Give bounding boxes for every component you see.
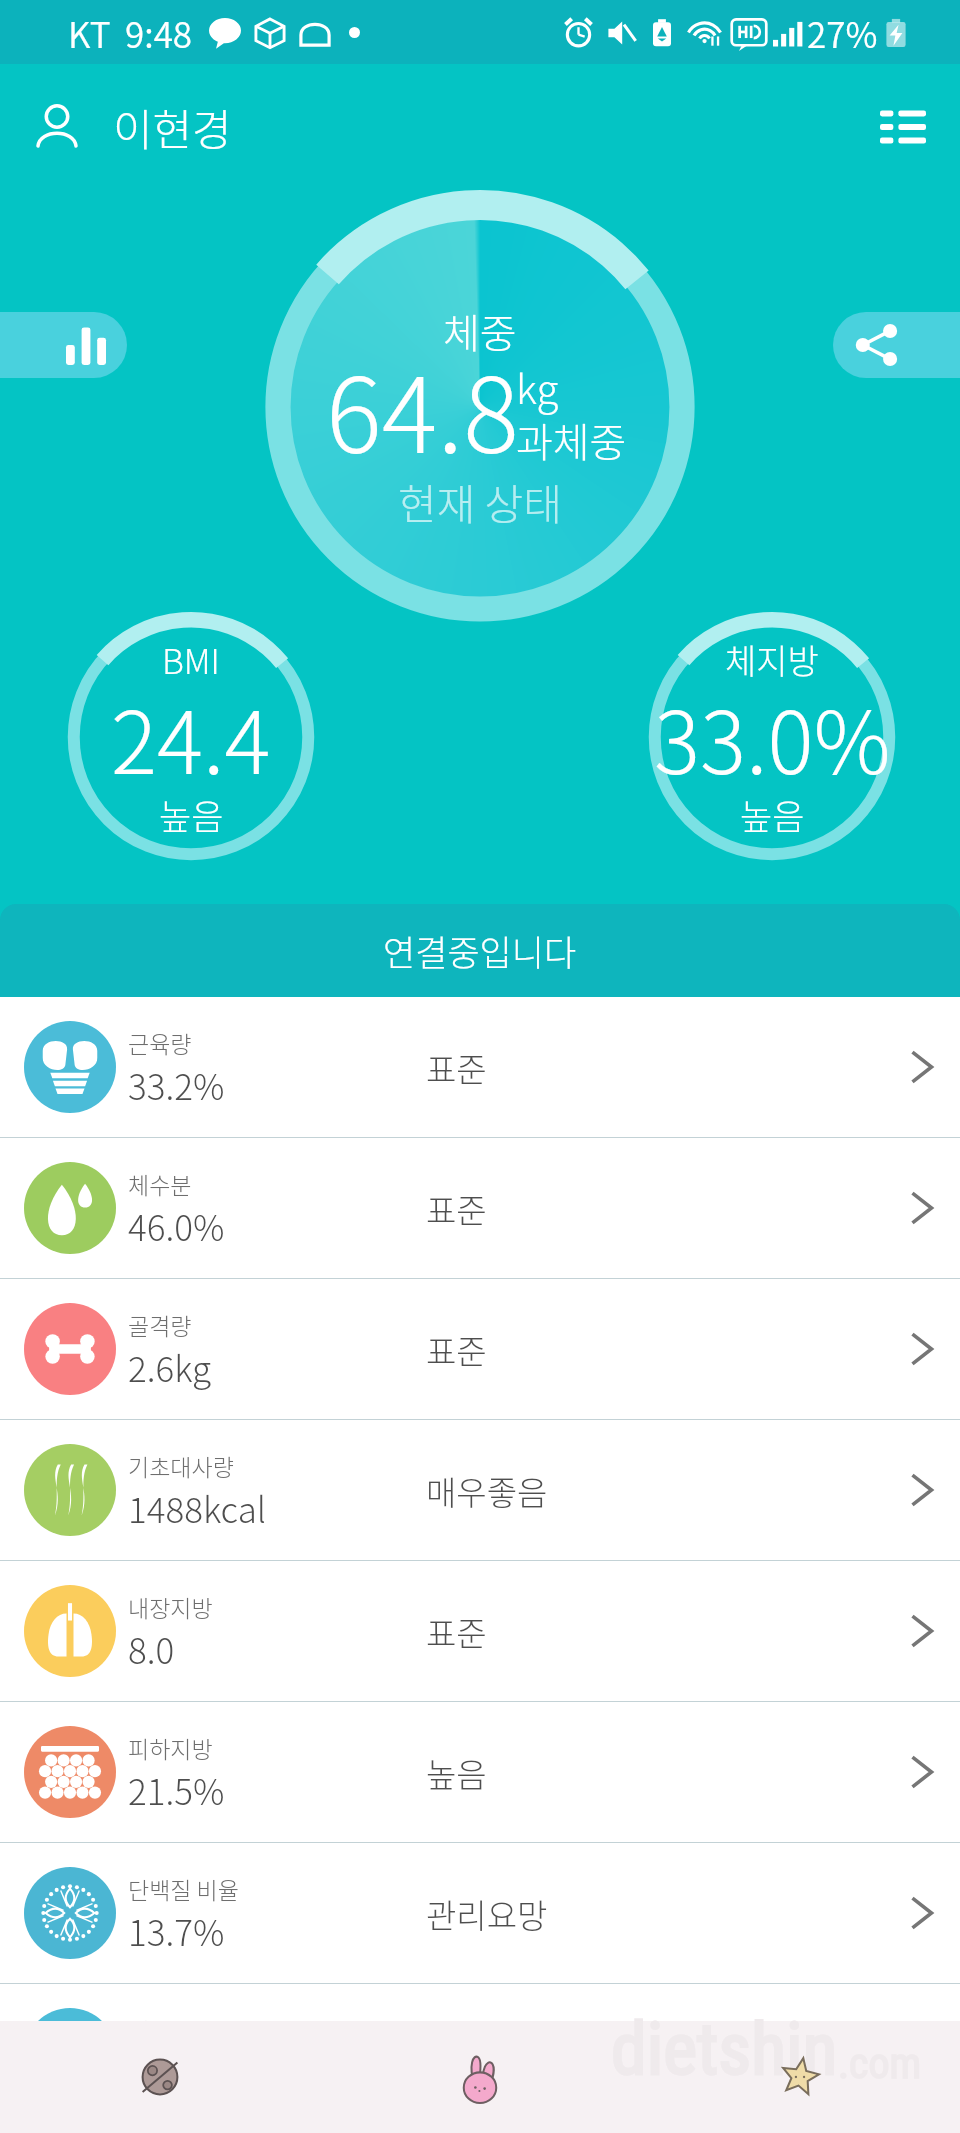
staticText: 표준 <box>426 2031 487 2079</box>
staticText: 표준 <box>426 1185 487 1233</box>
button[interactable]: 기초대사량 <box>0 1420 960 1560</box>
staticText: 13.7% <box>128 1905 225 1956</box>
staticText: 21.5% <box>128 1764 225 1815</box>
staticText: 33.2% <box>128 1059 225 1110</box>
staticText: 기초대사량 <box>128 1449 234 1482</box>
staticText: 표준 <box>426 1044 487 1092</box>
staticText: KT <box>68 7 111 58</box>
staticText: 9:48 <box>125 7 193 58</box>
staticText: 피하지방 <box>128 1731 213 1764</box>
staticText: 1488kcal <box>128 1482 267 1533</box>
staticText: 내당능 <box>128 2013 192 2046</box>
button[interactable]: Diary <box>320 2021 640 2133</box>
staticText: 24.4 <box>111 674 271 799</box>
staticText: 높음 <box>740 789 805 840</box>
staticText: 이현경 <box>113 96 232 158</box>
staticText: 현재 상태 <box>398 471 562 532</box>
button[interactable]: Profile <box>14 84 100 170</box>
staticText: 근육량 <box>128 1026 192 1059</box>
staticText: 관리요망 <box>426 1890 548 1938</box>
button[interactable]: Chart <box>0 312 127 378</box>
staticText: BMI <box>162 635 220 684</box>
staticText: 64.8 <box>326 332 519 483</box>
staticText: 체수분 <box>128 1167 192 1200</box>
button[interactable]: Share <box>833 312 960 378</box>
staticText: 2.6kg <box>128 1341 212 1392</box>
staticText: 높음 <box>426 1749 487 1797</box>
staticText: 5.4 <box>128 2046 175 2097</box>
button[interactable]: 골격량 <box>0 1279 960 1419</box>
staticText: 표준 <box>426 1326 487 1374</box>
staticText: 연결중입니다 <box>383 925 577 976</box>
button[interactable]: 체수분 <box>0 1138 960 1278</box>
staticText: 내장지방 <box>128 1590 213 1623</box>
button[interactable]: Home <box>0 2021 320 2133</box>
staticText: 과체중 <box>516 411 627 469</box>
button[interactable]: 피하지방 <box>0 1702 960 1842</box>
button[interactable]: 단백질 비율 <box>0 1843 960 1983</box>
staticText: 8.0 <box>128 1623 175 1674</box>
staticText: kg <box>516 358 559 416</box>
staticText: 46.0% <box>128 1200 225 1251</box>
staticText: 27% <box>807 7 878 58</box>
staticText: 33.0% <box>654 674 891 799</box>
staticText: 매우좋음 <box>426 1467 548 1515</box>
button[interactable]: 연결중입니다 <box>0 904 960 997</box>
staticText: 체지방 <box>725 635 819 684</box>
button[interactable]: 내당능 <box>0 1984 960 2124</box>
staticText: 체중 <box>443 302 517 360</box>
button[interactable]: 근육량 <box>0 997 960 1137</box>
staticText: 높음 <box>159 789 224 840</box>
button[interactable]: 내장지방 <box>0 1561 960 1701</box>
staticText: dietshin <box>611 2007 838 2091</box>
staticText: 표준 <box>426 1608 487 1656</box>
button[interactable]: Favourites <box>640 2021 960 2133</box>
staticText: 골격량 <box>128 1308 192 1341</box>
staticText: 단백질 비율 <box>128 1872 239 1905</box>
button[interactable]: Menu <box>860 84 946 170</box>
